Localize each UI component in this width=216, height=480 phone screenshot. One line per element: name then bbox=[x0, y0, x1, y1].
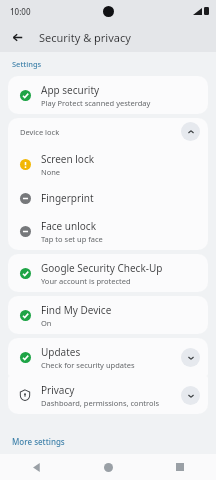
staticText: More settings bbox=[12, 436, 65, 447]
staticText: Settings bbox=[12, 59, 42, 69]
staticText: Updates bbox=[41, 345, 81, 359]
staticText: App security bbox=[41, 83, 100, 97]
staticText: None bbox=[41, 167, 61, 177]
staticText: Check for security updates bbox=[41, 360, 135, 370]
staticText: 10:00 bbox=[10, 6, 31, 17]
button[interactable]: Back bbox=[8, 28, 26, 46]
staticText: Dashboard, permissions, controls bbox=[41, 398, 160, 408]
staticText: Face unlock bbox=[41, 219, 96, 233]
button[interactable]: Find My Device bbox=[8, 296, 208, 334]
button[interactable]: Device lock bbox=[8, 118, 208, 145]
button[interactable]: Home bbox=[95, 454, 121, 480]
staticText: Find My Device bbox=[41, 303, 112, 317]
button[interactable]: Recent apps bbox=[167, 454, 193, 480]
staticText: Fingerprint bbox=[41, 191, 94, 205]
button[interactable]: Fingerprint bbox=[8, 183, 208, 212]
button[interactable]: Screen lock bbox=[8, 145, 208, 183]
button[interactable]: Updates bbox=[8, 338, 208, 376]
button[interactable]: Privacy bbox=[8, 376, 208, 414]
button[interactable]: Expand privacy bbox=[181, 386, 200, 405]
button[interactable]: App security bbox=[8, 76, 208, 114]
staticText: Security & privacy bbox=[39, 30, 131, 45]
button[interactable]: Collapse device lock bbox=[181, 122, 200, 141]
button[interactable]: More settings bbox=[0, 432, 216, 454]
staticText: Tap to set up face bbox=[41, 234, 103, 244]
staticText: Device lock bbox=[20, 127, 60, 137]
button[interactable]: Face unlock bbox=[8, 212, 208, 250]
staticText: Privacy bbox=[41, 383, 75, 397]
button[interactable]: Google Security Check-Up bbox=[8, 254, 208, 292]
button[interactable]: Back bbox=[23, 454, 49, 480]
staticText: Your account is protected bbox=[41, 276, 131, 286]
staticText: Play Protect scanned yesterday bbox=[41, 98, 151, 108]
staticText: Google Security Check-Up bbox=[41, 261, 163, 275]
button[interactable]: Expand updates bbox=[181, 348, 200, 367]
staticText: Screen lock bbox=[41, 152, 95, 166]
staticText: On bbox=[41, 318, 52, 328]
